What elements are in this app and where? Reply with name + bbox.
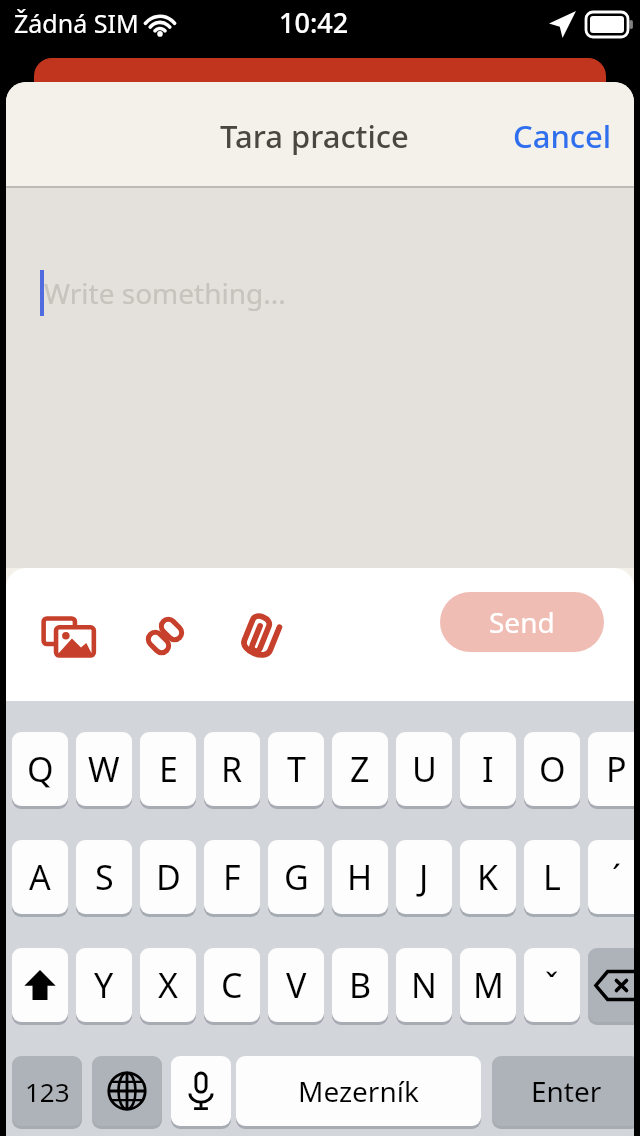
button[interactable]: Voice input <box>171 1056 231 1126</box>
staticText: F <box>223 854 241 900</box>
staticText: D <box>156 854 181 900</box>
staticText: Enter <box>531 1072 602 1110</box>
button[interactable]: N <box>396 948 452 1022</box>
button[interactable]: I <box>460 732 516 806</box>
button[interactable]: Cancel <box>491 103 634 169</box>
button[interactable]: Z <box>332 732 388 806</box>
staticText: X <box>158 962 178 1008</box>
button[interactable]: G <box>268 840 324 914</box>
staticText: P <box>606 746 627 792</box>
staticText: V <box>286 962 307 1008</box>
staticText: E <box>159 746 178 792</box>
button[interactable]: Q <box>12 732 68 806</box>
staticText: H <box>347 854 373 900</box>
button[interactable]: ´ <box>588 840 634 914</box>
staticText: G <box>284 854 309 900</box>
staticText: U <box>412 746 437 792</box>
staticText: N <box>411 962 437 1008</box>
staticText: Žádná SIM <box>14 6 139 40</box>
staticText: C <box>221 962 243 1008</box>
button[interactable]: H <box>332 840 388 914</box>
staticText: Z <box>350 746 370 792</box>
button[interactable]: E <box>140 732 196 806</box>
staticText: B <box>349 962 372 1008</box>
button[interactable]: Change language <box>92 1056 162 1126</box>
staticText: M <box>473 962 504 1008</box>
button[interactable]: Y <box>76 948 132 1022</box>
button[interactable]: Attach file <box>230 610 292 662</box>
button[interactable]: X <box>140 948 196 1022</box>
button[interactable]: M <box>460 948 516 1022</box>
staticText: Cancel <box>513 115 612 157</box>
staticText: ´ <box>612 855 621 899</box>
staticText: L <box>543 854 561 900</box>
button[interactable]: L <box>524 840 580 914</box>
button[interactable]: Mezerník <box>236 1056 481 1126</box>
staticText: ˇ <box>545 963 559 1007</box>
button[interactable]: C <box>204 948 260 1022</box>
button[interactable]: F <box>204 840 260 914</box>
staticText: Mezerník <box>298 1072 419 1110</box>
button[interactable]: Enter <box>492 1056 634 1126</box>
staticText: A <box>29 854 51 900</box>
button[interactable]: D <box>140 840 196 914</box>
staticText: W <box>88 746 120 792</box>
button[interactable]: Insert link <box>134 610 196 662</box>
button[interactable]: W <box>76 732 132 806</box>
button[interactable]: Backspace <box>588 948 634 1022</box>
button[interactable]: O <box>524 732 580 806</box>
button[interactable]: A <box>12 840 68 914</box>
staticText: Tara practice <box>220 115 409 157</box>
button[interactable]: Shift <box>12 948 68 1022</box>
button[interactable]: B <box>332 948 388 1022</box>
staticText: Send <box>489 603 555 641</box>
staticText: O <box>539 746 566 792</box>
button[interactable]: K <box>460 840 516 914</box>
button[interactable]: Add photo <box>36 612 102 662</box>
staticText: T <box>287 746 306 792</box>
button[interactable]: ˇ <box>524 948 580 1022</box>
staticText: 123 <box>25 1074 70 1109</box>
button[interactable]: 123 <box>12 1056 82 1126</box>
staticText: K <box>477 854 499 900</box>
button[interactable]: P <box>588 732 634 806</box>
button[interactable]: R <box>204 732 260 806</box>
staticText: Q <box>27 746 54 792</box>
button[interactable]: Send <box>440 592 604 652</box>
button[interactable]: Write something... <box>6 188 634 568</box>
staticText: R <box>221 746 243 792</box>
button[interactable]: T <box>268 732 324 806</box>
staticText: J <box>419 854 429 900</box>
button[interactable]: U <box>396 732 452 806</box>
button[interactable]: V <box>268 948 324 1022</box>
staticText: I <box>482 746 494 792</box>
staticText: Write something... <box>44 274 286 312</box>
staticText: S <box>95 854 114 900</box>
staticText: Y <box>94 962 114 1008</box>
button[interactable]: J <box>396 840 452 914</box>
button[interactable]: S <box>76 840 132 914</box>
staticText: 10:42 <box>279 4 349 41</box>
